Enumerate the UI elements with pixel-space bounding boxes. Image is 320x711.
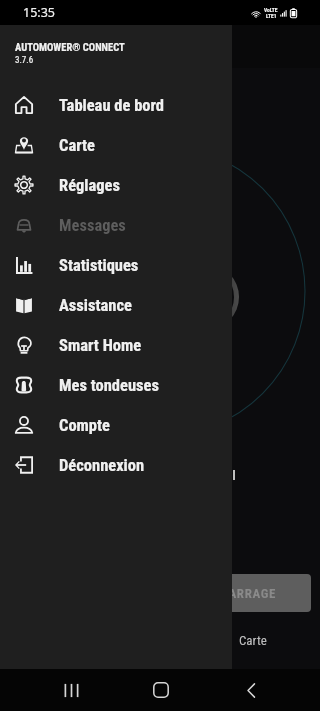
button[interactable]: Déconnexion	[0, 445, 232, 485]
staticText: Messages	[59, 216, 126, 235]
button[interactable]: Home	[133, 669, 189, 711]
staticText: Smart Home	[59, 336, 142, 355]
button[interactable]: Assistance	[0, 285, 232, 325]
button[interactable]: Mes tondeuses	[0, 365, 232, 405]
staticText: Tableau de bord	[59, 96, 165, 115]
button[interactable]: Compte	[0, 405, 232, 445]
staticText: Compte	[59, 416, 110, 435]
staticText: Assistance	[59, 296, 132, 315]
button[interactable]: Smart Home	[0, 325, 232, 365]
button[interactable]: Messages	[0, 205, 232, 245]
button[interactable]: Réglages	[0, 165, 232, 205]
button[interactable]: Recent apps	[44, 669, 99, 711]
staticText: 15:35	[23, 4, 55, 21]
staticText: VoLTE	[264, 7, 278, 13]
staticText: LTE1	[266, 13, 277, 19]
staticText: Réglages	[59, 176, 120, 195]
staticText: Déconnexion	[59, 456, 145, 475]
staticText: DÉMARRAGE	[203, 586, 276, 601]
button[interactable]: Carte	[0, 125, 232, 165]
staticText: Carte	[59, 136, 95, 155]
staticText: Mes tondeuses	[59, 376, 159, 395]
staticText: Carte	[239, 633, 267, 648]
button[interactable]: Back	[223, 669, 279, 711]
button[interactable]: DÉMARRAGE	[168, 574, 311, 612]
staticText: AUTOMOWER® CONNECT	[15, 41, 125, 53]
button[interactable]: Statistiques	[0, 245, 232, 285]
staticText: Statistiques	[59, 256, 139, 275]
staticText: 3.7.6	[15, 55, 34, 66]
button[interactable]: Tableau de bord	[0, 85, 232, 125]
